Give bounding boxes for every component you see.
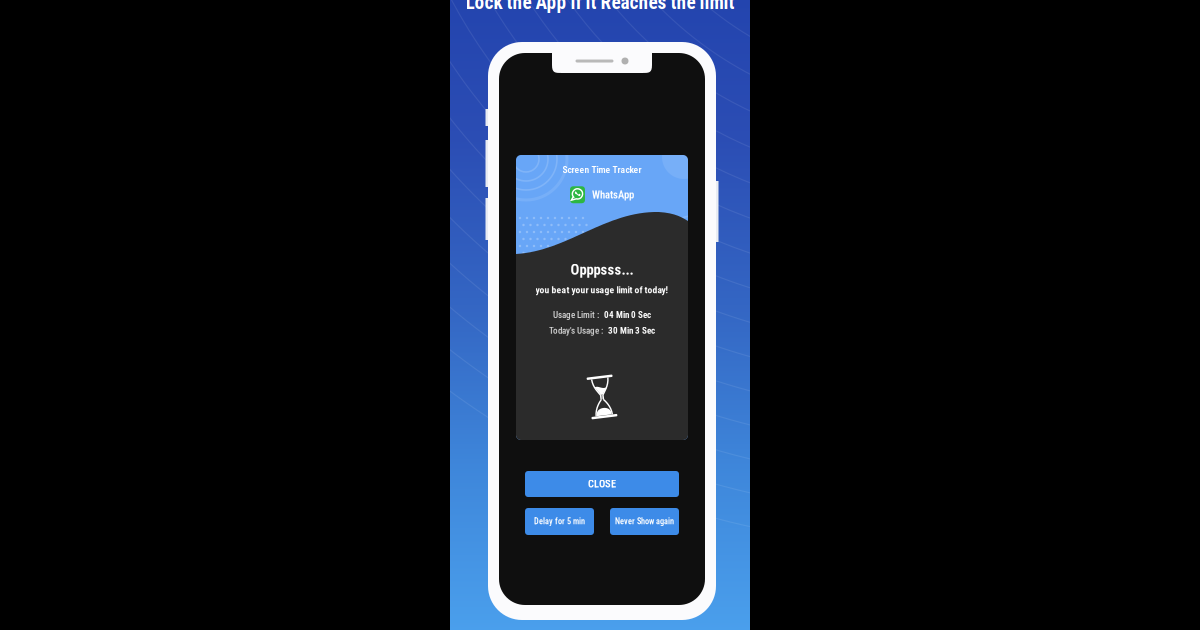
staticText: Opppsss... (570, 261, 633, 278)
staticText: Usage Limit : (553, 310, 599, 320)
staticText: Lock the App if it Reaches the limit (465, 0, 734, 14)
staticText: CLOSE (588, 478, 616, 490)
staticText: Delay for 5 min (534, 517, 585, 526)
staticText: 04 Min 0 Sec (604, 310, 651, 320)
staticText: 30 Min 3 Sec (608, 325, 655, 336)
button[interactable]: Never Show again (610, 508, 679, 535)
staticText: Today's Usage : (549, 325, 603, 336)
button[interactable]: CLOSE (525, 471, 679, 497)
button[interactable]: Delay for 5 min (525, 508, 594, 535)
staticText: WhatsApp (592, 188, 634, 201)
staticText: Never Show again (615, 517, 674, 526)
staticText: Screen Time Tracker (562, 164, 641, 175)
staticText: you beat your usage limit of today! (535, 284, 668, 296)
